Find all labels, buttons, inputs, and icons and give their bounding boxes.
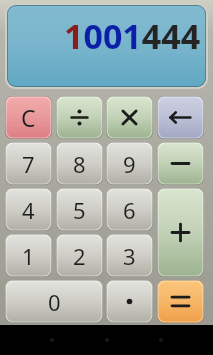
staticText: 4: [22, 195, 35, 225]
button[interactable]: Multiply: [106, 96, 153, 139]
staticText: C: [21, 102, 36, 133]
button[interactable]: 8: [56, 142, 103, 185]
button[interactable]: 0: [5, 280, 103, 323]
button[interactable]: Equals: [157, 280, 204, 323]
button[interactable]: Minus: [157, 142, 204, 185]
button[interactable]: 5: [56, 188, 103, 231]
staticText: 7: [22, 149, 35, 179]
staticText: 1001444: [64, 13, 201, 59]
staticText: 6: [123, 195, 136, 225]
button[interactable]: 1: [5, 234, 52, 277]
button[interactable]: Navigation: [105, 338, 109, 342]
button[interactable]: Navigation: [50, 338, 54, 342]
button[interactable]: Backspace: [157, 96, 204, 139]
button[interactable]: 9: [106, 142, 153, 185]
button[interactable]: C: [5, 96, 52, 139]
button[interactable]: Divide: [56, 96, 103, 139]
button[interactable]: Navigation: [159, 338, 163, 342]
staticText: 5: [73, 195, 86, 225]
staticText: 9: [123, 149, 136, 179]
staticText: 0: [48, 287, 61, 317]
staticText: 8: [73, 149, 86, 179]
button[interactable]: 4: [5, 188, 52, 231]
staticText: 2: [73, 241, 86, 271]
button[interactable]: 2: [56, 234, 103, 277]
button[interactable]: 6: [106, 188, 153, 231]
button[interactable]: Decimal point: [106, 280, 153, 323]
button[interactable]: Plus: [157, 188, 204, 277]
staticText: 1: [22, 241, 35, 271]
button[interactable]: 7: [5, 142, 52, 185]
button[interactable]: 3: [106, 234, 153, 277]
staticText: 3: [123, 241, 136, 271]
